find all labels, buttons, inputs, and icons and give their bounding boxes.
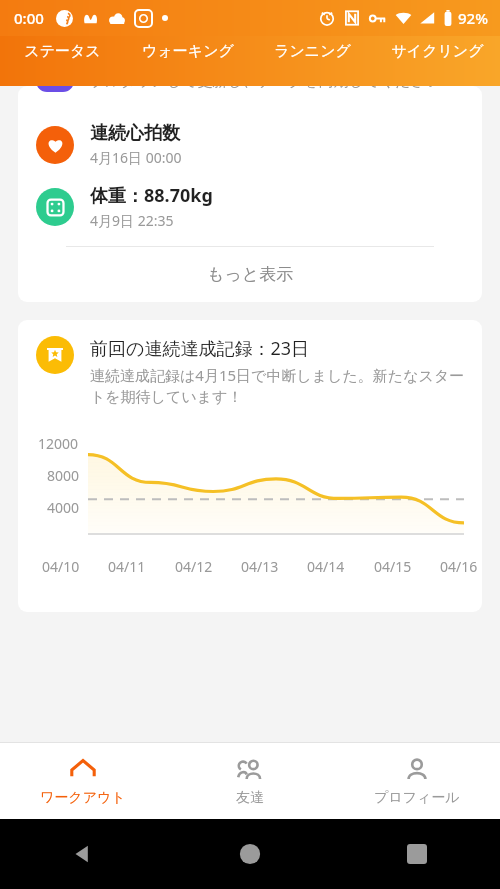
button[interactable]: ステータス	[0, 36, 125, 86]
button[interactable]: プロフィール	[333, 743, 500, 819]
staticText: ランニング	[274, 42, 351, 61]
staticText: 04/12	[175, 557, 213, 576]
button[interactable]: もっと表示	[18, 247, 482, 302]
staticText: 04/10	[42, 557, 80, 576]
staticText: 8000	[47, 466, 80, 485]
button[interactable]: Recent apps	[333, 819, 500, 889]
button[interactable]: ウォーキング	[125, 36, 250, 86]
button[interactable]: 友達	[166, 743, 333, 819]
button[interactable]: ランニング	[250, 36, 375, 86]
button[interactable]: 前回の連続達成記録：23日	[18, 336, 482, 406]
staticText: 92%	[458, 8, 488, 28]
staticText: 04/16	[440, 557, 478, 576]
staticText: 友達	[236, 789, 264, 807]
button[interactable]: Back	[0, 819, 166, 889]
staticText: 4月16日 00:00	[90, 148, 182, 167]
staticText: サイクリング	[391, 42, 484, 61]
staticText: ステータス	[24, 42, 101, 61]
staticText: 0:00	[14, 8, 44, 28]
button[interactable]: プルダウンして更新し、データを同期してください	[18, 86, 482, 108]
staticText: 連続達成記録は4月15日で中断しました。新たなスタートを期待しています！	[90, 365, 466, 406]
button[interactable]: サイクリング	[375, 36, 500, 86]
button[interactable]: 体重：88.70kg	[18, 183, 482, 230]
button[interactable]: 連続心拍数	[18, 122, 482, 167]
button[interactable]: ワークアウト	[0, 743, 166, 819]
staticText: 04/15	[374, 557, 412, 576]
staticText: プルダウンして更新し、データを同期してください	[90, 86, 441, 91]
staticText: ワークアウト	[40, 789, 126, 807]
staticText: ウォーキング	[142, 42, 234, 61]
staticText: 04/13	[241, 557, 279, 576]
staticText: 前回の連続達成記録：23日	[90, 336, 310, 361]
staticText: 体重：88.70kg	[90, 183, 213, 208]
button[interactable]: Home	[166, 819, 333, 889]
staticText: 4000	[47, 498, 80, 517]
staticText: 04/14	[307, 557, 345, 576]
staticText: 04/11	[108, 557, 146, 576]
staticText: 12000	[38, 434, 79, 453]
staticText: 4月9日 22:35	[90, 211, 174, 230]
staticText: 連続心拍数	[90, 122, 180, 145]
staticText: もっと表示	[207, 264, 294, 285]
staticText: プロフィール	[374, 789, 460, 807]
